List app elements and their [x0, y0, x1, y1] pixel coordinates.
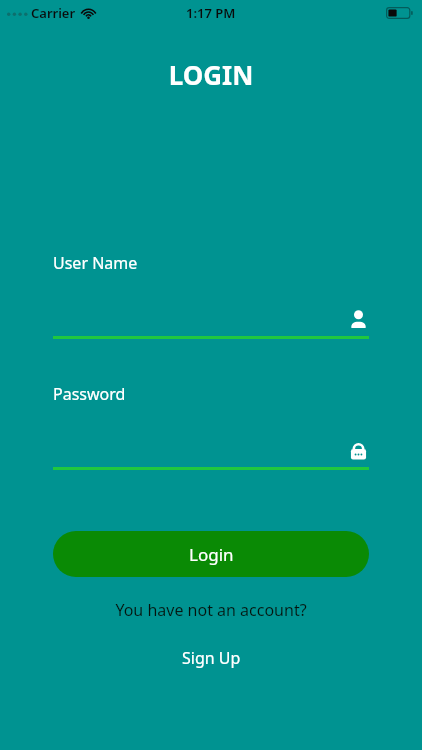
staticText: 1:17 PM: [186, 4, 236, 22]
button[interactable]: Password: [53, 383, 369, 470]
button[interactable]: User Name: [53, 252, 369, 339]
other: User name: [348, 309, 369, 330]
staticText: Password: [53, 383, 126, 405]
staticText: User Name: [53, 252, 138, 274]
button[interactable]: Login: [53, 531, 369, 577]
other: Password: [348, 440, 369, 461]
button[interactable]: Sign Up: [53, 647, 369, 669]
staticText: LOGIN: [0, 57, 422, 92]
staticText: You have not an account?: [53, 599, 369, 621]
staticText: Carrier: [31, 4, 76, 22]
staticText: Sign Up: [182, 647, 241, 669]
staticText: Login: [189, 543, 234, 566]
